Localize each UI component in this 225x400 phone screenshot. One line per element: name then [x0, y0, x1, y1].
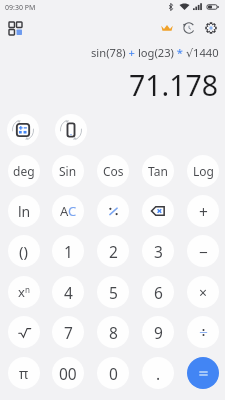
button[interactable]: All clear: [52, 195, 84, 227]
staticText: 71.178: [129, 66, 219, 105]
staticText: 9: [154, 322, 163, 343]
button[interactable]: Power: [8, 276, 40, 308]
button[interactable]: Switch to scientific: [7, 114, 39, 146]
button[interactable]: 4: [52, 276, 84, 308]
button[interactable]: (): [8, 235, 40, 267]
button[interactable]: Equals: [187, 357, 219, 389]
staticText: Cos: [103, 163, 124, 179]
button[interactable]: Cos: [97, 155, 129, 187]
staticText: 09:30 PM: [5, 3, 36, 13]
button[interactable]: 00: [52, 357, 84, 389]
staticText: 3: [154, 241, 163, 262]
staticText: 0: [109, 363, 118, 384]
button[interactable]: +: [187, 195, 219, 227]
staticText: 6: [154, 282, 163, 303]
staticText: 2: [109, 241, 118, 262]
button[interactable]: deg: [8, 155, 40, 187]
button[interactable]: 8: [97, 316, 129, 348]
button[interactable]: 5: [97, 276, 129, 308]
button[interactable]: Rotate screen: [55, 114, 87, 146]
button[interactable]: 7: [52, 316, 84, 348]
button[interactable]: 1: [52, 235, 84, 267]
staticText: +: [199, 201, 208, 222]
button[interactable]: Percent: [97, 195, 129, 227]
button[interactable]: 6: [142, 276, 174, 308]
button[interactable]: 9: [142, 316, 174, 348]
staticText: 4: [64, 282, 73, 303]
staticText: .: [156, 363, 161, 384]
button[interactable]: π: [8, 357, 40, 389]
staticText: 1: [64, 241, 73, 262]
staticText: 7: [64, 322, 73, 343]
button[interactable]: ln: [8, 195, 40, 227]
button[interactable]: 2: [97, 235, 129, 267]
staticText: 5: [109, 282, 118, 303]
button[interactable]: 3: [142, 235, 174, 267]
button[interactable]: Divide: [187, 316, 219, 348]
button[interactable]: .: [142, 357, 174, 389]
staticText: Sin: [59, 163, 77, 179]
button[interactable]: History: [179, 18, 199, 38]
button[interactable]: −: [187, 235, 219, 267]
staticText: Log: [193, 163, 214, 179]
staticText: π: [19, 364, 29, 383]
staticText: xn: [18, 283, 30, 301]
staticText: −: [199, 241, 208, 262]
staticText: AC: [60, 202, 77, 220]
staticText: ln: [18, 202, 31, 221]
staticText: ×: [199, 283, 208, 302]
button[interactable]: ×: [187, 276, 219, 308]
button[interactable]: 0: [97, 357, 129, 389]
button[interactable]: Log: [187, 155, 219, 187]
button[interactable]: Square root: [8, 316, 40, 348]
button[interactable]: Sin: [52, 155, 84, 187]
button[interactable]: Premium: [157, 18, 177, 38]
staticText: 00: [59, 363, 77, 384]
button[interactable]: Scan: [4, 17, 26, 39]
staticText: Tan: [148, 163, 168, 179]
staticText: (): [19, 241, 29, 261]
staticText: 8: [109, 322, 118, 343]
staticText: deg: [13, 163, 35, 179]
button[interactable]: Tan: [142, 155, 174, 187]
button[interactable]: Settings: [201, 18, 221, 38]
staticText: sin(78) + log(23) * √1440: [91, 45, 219, 60]
button[interactable]: Backspace: [142, 195, 174, 227]
